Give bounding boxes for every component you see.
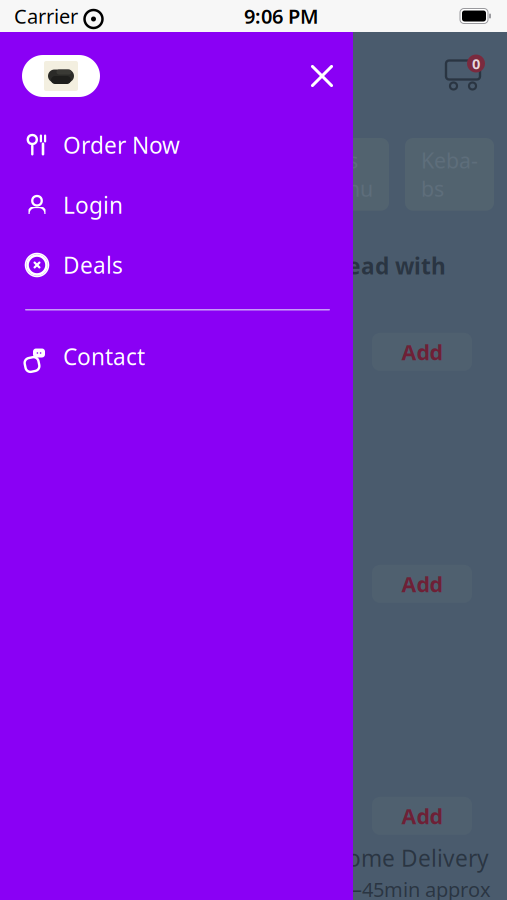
staticText: Contact: [63, 341, 145, 371]
staticText: 30–45min approx: [330, 876, 491, 900]
button[interactable]: Login: [0, 190, 353, 220]
button[interactable]: Restaurant logo: [22, 55, 100, 97]
staticText: Home Delivery: [330, 843, 489, 873]
staticText: Garlic Bread with Cheese: [250, 251, 446, 311]
staticText: 9:06 PM: [244, 3, 319, 29]
button[interactable]: Deals: [0, 250, 353, 280]
button[interactable]: Close menu: [299, 53, 345, 99]
staticText: Add: [401, 570, 442, 598]
button[interactable]: Kids Menu: [300, 138, 389, 211]
staticText: Add: [401, 802, 442, 830]
staticText: 0: [472, 54, 480, 73]
staticText: Kids Menu: [316, 146, 373, 203]
staticText: Deals: [63, 250, 123, 280]
staticText: Login: [63, 190, 123, 220]
button[interactable]: Add: [372, 565, 472, 603]
staticText: Order Now: [63, 130, 180, 160]
button[interactable]: Order Now: [0, 130, 353, 160]
button[interactable]: Contact: [0, 341, 353, 371]
button[interactable]: Add: [372, 333, 472, 371]
button[interactable]: Add: [372, 797, 472, 835]
staticText: Add: [401, 338, 442, 366]
staticText: Kebabs: [421, 146, 478, 203]
staticText: Carrier: [14, 3, 78, 29]
button[interactable]: Cart: [433, 49, 493, 101]
